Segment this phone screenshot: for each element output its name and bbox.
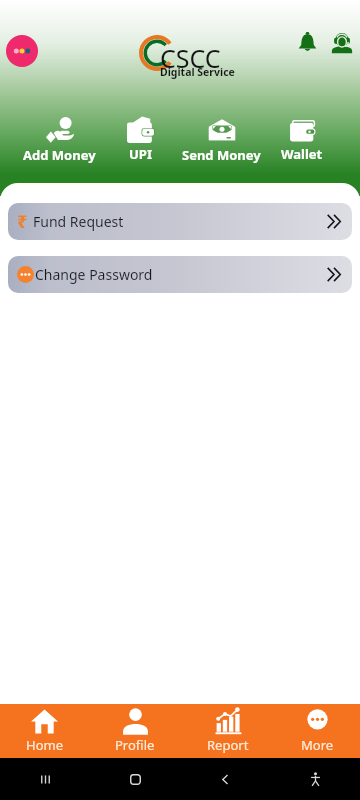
button[interactable]: Customer support — [331, 32, 353, 54]
button[interactable]: Notifications — [297, 32, 318, 53]
button[interactable]: Profile — [105, 704, 165, 758]
staticText: Wallet — [281, 145, 323, 163]
staticText: Report — [207, 736, 249, 754]
staticText: Digital Service — [160, 65, 235, 79]
staticText: UPI — [129, 145, 152, 163]
staticText: Fund Request — [33, 212, 124, 231]
button[interactable]: Report — [197, 704, 259, 758]
button[interactable]: ₹ — [8, 203, 352, 240]
staticText: ₹ — [17, 209, 28, 234]
staticText: CSCC — [160, 41, 221, 75]
button[interactable]: UPI — [125, 116, 156, 163]
button[interactable]: Change Password — [8, 256, 352, 293]
staticText: Change Password — [35, 265, 153, 284]
staticText: Send Money — [182, 146, 261, 164]
staticText: More — [301, 736, 334, 754]
button[interactable]: Menu — [6, 35, 38, 67]
staticText: Home — [26, 736, 63, 754]
button[interactable]: More — [291, 704, 344, 758]
button[interactable]: Send Money — [180, 116, 263, 164]
staticText: Add Money — [23, 146, 96, 164]
button[interactable]: Wallet — [279, 116, 325, 163]
button[interactable]: Home — [16, 704, 73, 758]
button[interactable]: Add Money — [21, 116, 98, 164]
staticText: Profile — [115, 736, 155, 754]
